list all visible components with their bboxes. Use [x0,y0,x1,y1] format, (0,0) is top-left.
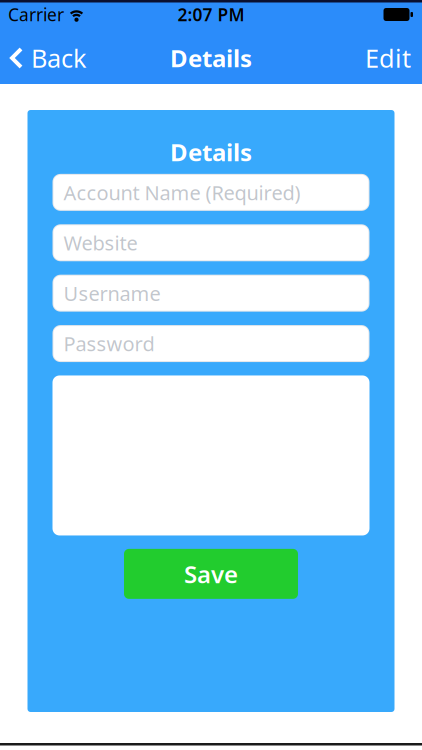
button[interactable]: Account Name (Required) [52,174,369,211]
staticText: Website [63,229,137,256]
button[interactable]: Save [124,549,298,599]
staticText: Save [184,558,238,590]
staticText: Details [170,42,252,74]
button[interactable]: Password [52,325,369,362]
button[interactable]: Username [52,275,369,312]
button[interactable]: Website [52,224,369,261]
staticText: Password [63,330,154,357]
button[interactable]: Notes [52,375,369,535]
staticText: Back [31,41,87,75]
staticText: 2:07 PM [177,3,244,26]
button[interactable]: Edit [365,38,422,72]
staticText: Details [170,136,252,168]
staticText: Edit [365,41,411,75]
staticText: Carrier [8,3,64,26]
staticText: Username [63,280,160,306]
button[interactable]: Back [0,38,87,72]
staticText: Account Name (Required) [63,179,300,206]
